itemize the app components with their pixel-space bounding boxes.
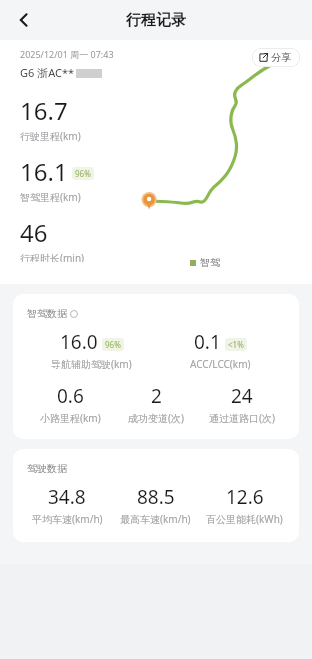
staticText: 16.7: [20, 94, 68, 127]
staticText: 96%: [105, 339, 121, 350]
staticText: <1%: [228, 339, 244, 350]
button[interactable]: Back: [8, 4, 40, 36]
staticText: 成功变道(次): [128, 411, 184, 425]
staticText: 2025/12/01 周一 07:43: [20, 48, 114, 60]
staticText: 行驶里程(km): [20, 129, 81, 143]
staticText: ACC/LCC(km): [190, 357, 251, 371]
staticText: 行程时长(min): [20, 251, 85, 262]
staticText: 16.1: [20, 155, 68, 188]
staticText: 12.6: [226, 484, 264, 510]
staticText: 智驾数据: [27, 307, 67, 320]
staticText: 0.1: [194, 329, 221, 355]
staticText: 分享: [271, 51, 291, 64]
staticText: 88.5: [137, 484, 175, 510]
staticText: 智驾里程(km): [20, 190, 81, 204]
staticText: 46: [20, 216, 48, 249]
staticText: 导航辅助驾驶(km): [51, 357, 132, 371]
staticText: 0.6: [57, 383, 84, 409]
staticText: 最高车速(km/h): [120, 512, 191, 526]
staticText: 智驾: [200, 256, 220, 269]
staticText: 16.0: [60, 329, 98, 355]
button[interactable]: 分享: [252, 48, 298, 67]
staticText: G6 浙AC**: [20, 65, 75, 80]
staticText: 96%: [75, 168, 91, 179]
staticText: 24: [231, 383, 253, 409]
staticText: 小路里程(km): [40, 411, 101, 425]
staticText: 驾驶数据: [27, 462, 67, 475]
staticText: 百公里能耗(kWh): [206, 512, 283, 526]
staticText: 2: [151, 383, 162, 409]
staticText: 平均车速(km/h): [32, 512, 103, 526]
staticText: 通过道路口(次): [209, 411, 275, 425]
staticText: 34.8: [48, 484, 86, 510]
staticText: 行程记录: [126, 11, 186, 30]
